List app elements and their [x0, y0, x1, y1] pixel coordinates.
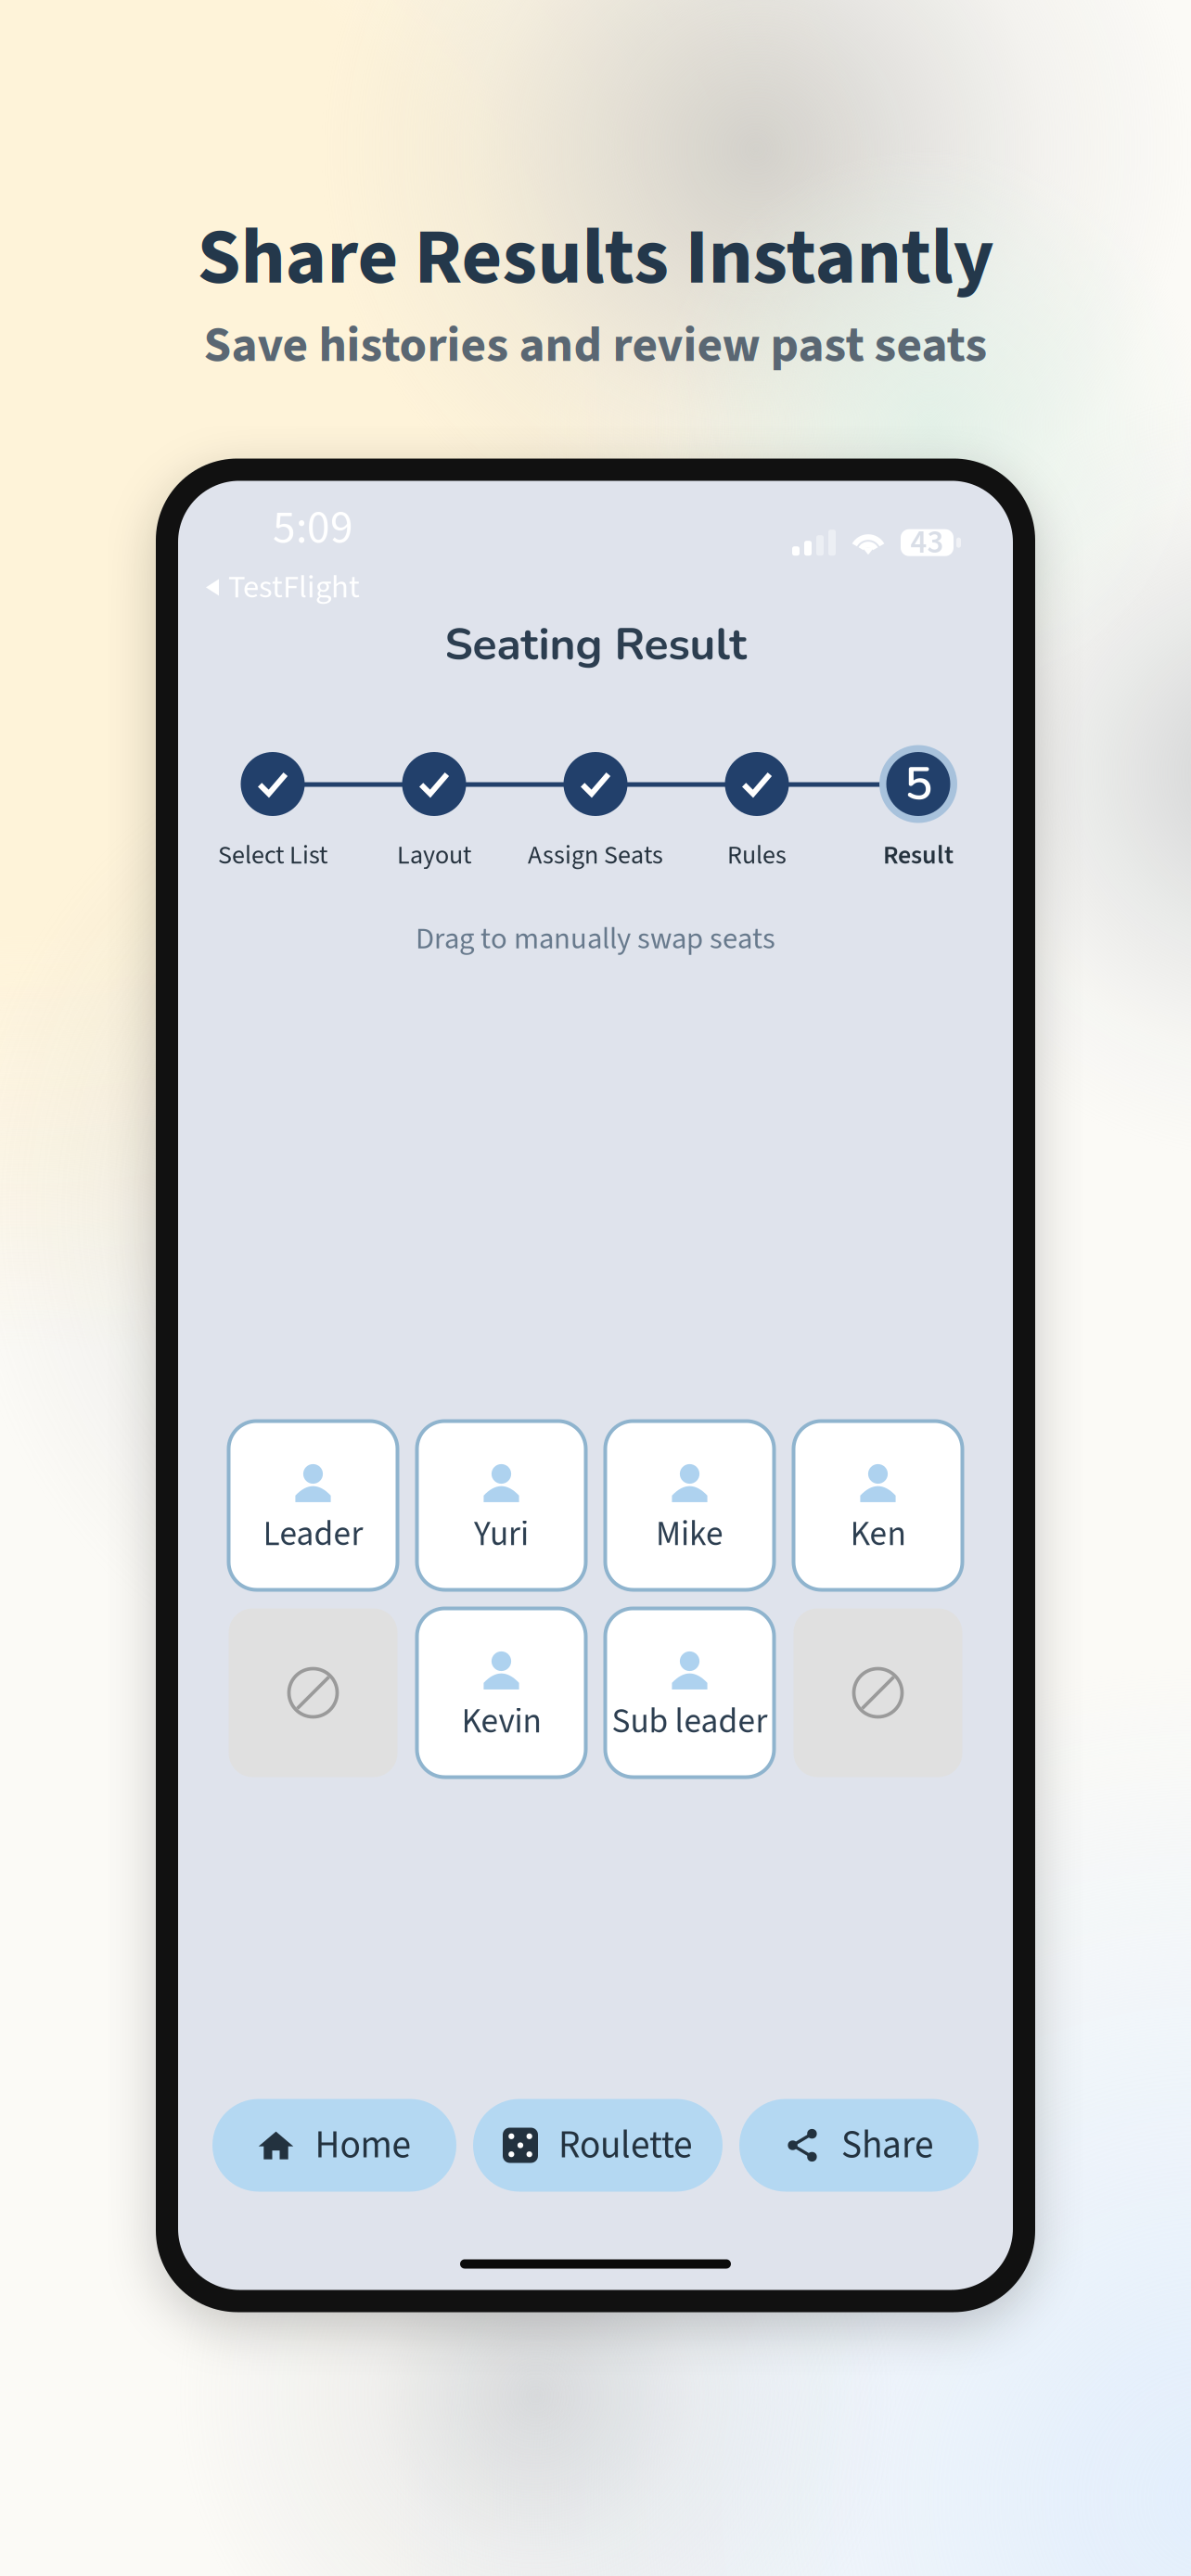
button[interactable]: Sub leader	[605, 1608, 774, 1777]
staticText: Sub leader	[612, 1697, 768, 1746]
staticText: Leader	[263, 1510, 363, 1559]
staticText: Drag to manually swap seats	[416, 917, 775, 960]
staticText: 5:09	[273, 496, 353, 561]
button[interactable]: Share	[739, 2099, 979, 2192]
button[interactable]: Roulette	[473, 2099, 723, 2192]
button[interactable]: Leader	[229, 1421, 397, 1590]
staticText: Share	[841, 2118, 934, 2173]
staticText: Rules	[727, 837, 787, 874]
staticText: Select List	[218, 837, 327, 874]
button[interactable]: Mike	[605, 1421, 774, 1590]
staticText: Assign Seats	[528, 837, 663, 874]
button[interactable]: Ken	[794, 1421, 962, 1590]
staticText: Kevin	[461, 1697, 541, 1746]
staticText: 43	[910, 520, 944, 566]
staticText: Roulette	[558, 2118, 693, 2173]
button[interactable]: Home	[212, 2099, 456, 2192]
staticText: 5	[904, 752, 932, 816]
staticText: Layout	[397, 837, 471, 874]
staticText: Ken	[850, 1510, 906, 1559]
staticText: Home	[315, 2118, 411, 2173]
button[interactable]: Kevin	[417, 1608, 586, 1777]
staticText: Yuri	[474, 1510, 529, 1559]
staticText: TestFlight	[228, 565, 360, 610]
staticText: Mike	[656, 1510, 724, 1559]
staticText: Result	[883, 837, 954, 874]
staticText: Seating Result	[445, 615, 746, 675]
staticText: Save histories and review past seats	[204, 310, 987, 381]
staticText: Share Results Instantly	[197, 202, 994, 314]
button[interactable]: Yuri	[417, 1421, 586, 1590]
